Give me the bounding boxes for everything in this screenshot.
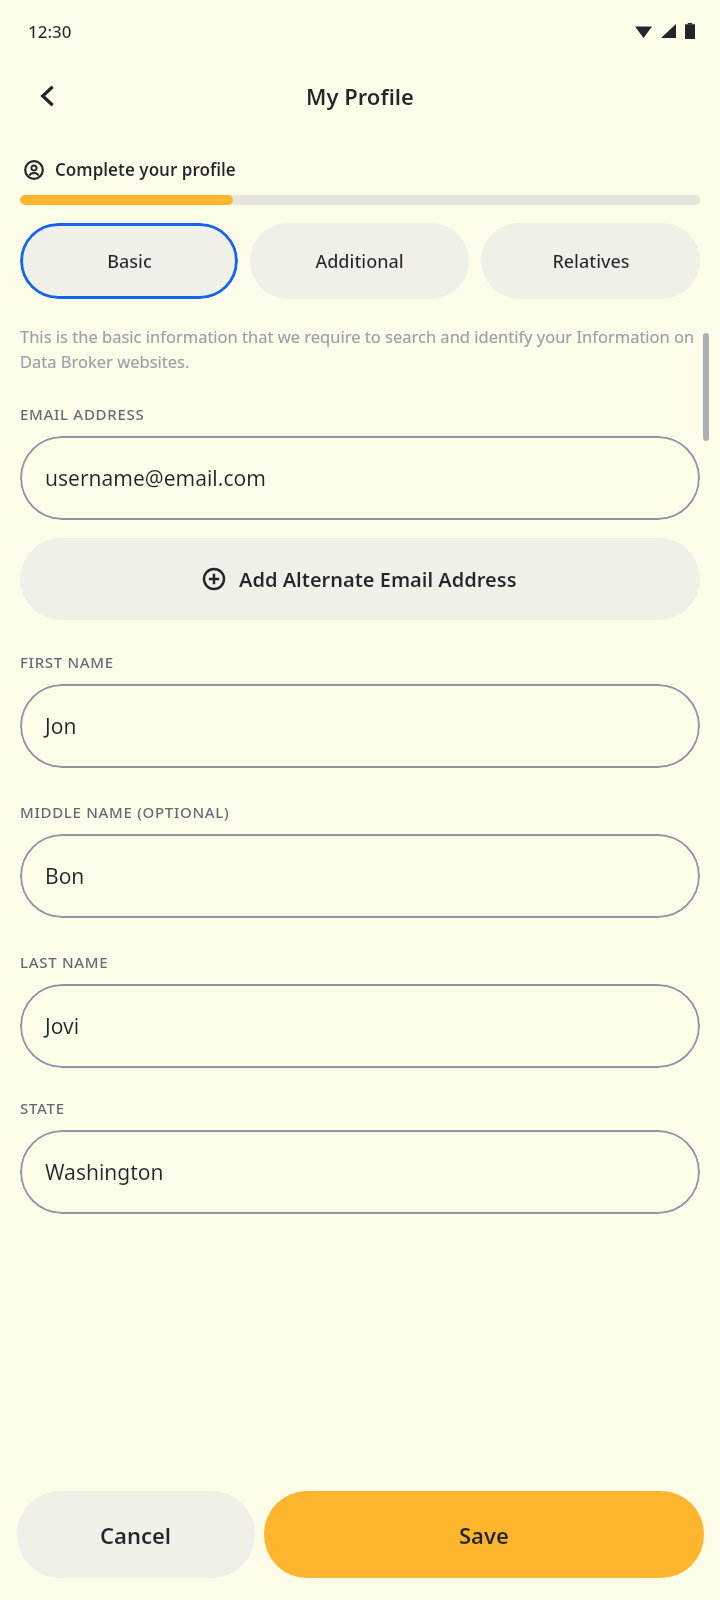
button[interactable]: Washington	[20, 1130, 700, 1214]
staticText: Additional	[315, 249, 404, 274]
staticText: Jovi	[45, 1012, 80, 1041]
button[interactable]: Jovi	[20, 984, 700, 1068]
button[interactable]: Bon	[20, 834, 700, 918]
staticText: This is the basic information that we re…	[20, 325, 700, 372]
staticText: Washington	[45, 1158, 164, 1187]
button[interactable]: Cancel	[17, 1491, 255, 1578]
button[interactable]: Jon	[20, 684, 700, 768]
staticText: Complete your profile	[55, 158, 236, 181]
staticText: Bon	[45, 862, 85, 891]
staticText: LAST NAME	[20, 952, 109, 972]
staticText: Add Alternate Email Address	[239, 566, 517, 593]
staticText: EMAIL ADDRESS	[20, 404, 145, 424]
button[interactable]: Back	[22, 70, 74, 122]
button[interactable]: Save	[264, 1491, 704, 1578]
staticText: FIRST NAME	[20, 652, 114, 672]
button[interactable]: Relatives	[481, 223, 700, 299]
staticText: Basic	[107, 249, 152, 274]
button[interactable]: Basic	[20, 223, 238, 299]
staticText: Save	[459, 1520, 509, 1550]
button[interactable]: username@email.com	[20, 436, 700, 520]
staticText: My Profile	[306, 81, 414, 111]
button[interactable]: Add Alternate Email Address	[20, 538, 700, 620]
staticText: Cancel	[100, 1520, 172, 1550]
staticText: MIDDLE NAME (OPTIONAL)	[20, 802, 230, 822]
button[interactable]: Additional	[250, 223, 469, 299]
staticText: 12:30	[28, 20, 72, 43]
staticText: Jon	[45, 712, 77, 741]
staticText: username@email.com	[45, 464, 266, 493]
staticText: Relatives	[552, 249, 630, 274]
staticText: STATE	[20, 1098, 65, 1118]
